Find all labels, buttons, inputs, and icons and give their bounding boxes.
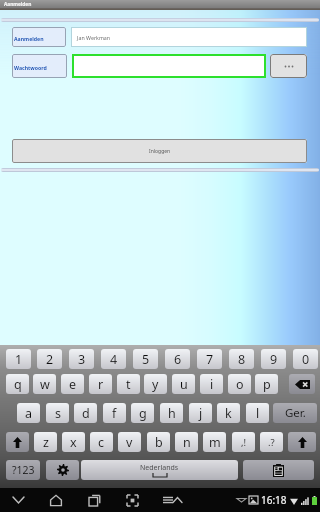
button[interactable]: 3 [69,349,94,369]
button[interactable]: Space [81,460,238,480]
staticText: g [139,405,147,422]
button[interactable]: j [189,403,212,423]
staticText: Nederlands [140,463,179,473]
staticText: 0 [302,351,310,368]
button[interactable]: Home [46,490,66,510]
button[interactable]: f [103,403,126,423]
button[interactable] [72,54,266,78]
staticText: u [180,376,188,393]
button[interactable]: Clipboard [243,460,314,480]
button[interactable]: Ger. [273,403,317,423]
staticText: q [14,376,22,393]
staticText: e [69,376,77,393]
button[interactable]: v [118,432,141,452]
staticText: f [112,405,117,422]
staticText: r [98,376,104,393]
staticText: 7 [206,351,214,368]
button[interactable]: .? [260,432,283,452]
staticText: Jan Werkman [77,34,111,41]
button[interactable]: Settings [46,460,79,480]
staticText: 8 [238,351,246,368]
button[interactable]: x [62,432,85,452]
button[interactable]: Backspace [289,374,315,394]
staticText: x [70,434,77,451]
staticText: h [168,405,176,422]
button[interactable]: m [203,432,226,452]
staticText: a [25,405,33,422]
staticText: d [82,405,90,422]
button[interactable]: 2 [37,349,62,369]
button[interactable]: r [89,374,112,394]
button[interactable]: u [172,374,195,394]
staticText: s [55,405,61,422]
button[interactable]: t [117,374,140,394]
button[interactable]: q [6,374,29,394]
button[interactable]: n [175,432,198,452]
staticText: i [210,376,214,393]
staticText: 4 [110,351,118,368]
button[interactable]: ,! [232,432,255,452]
button[interactable]: h [160,403,183,423]
staticText: 6 [174,351,182,368]
staticText: t [126,376,131,393]
button[interactable]: l [246,403,269,423]
button[interactable]: z [34,432,57,452]
staticText: 5 [142,351,150,368]
button[interactable]: Wachtwoord [12,54,67,78]
staticText: 1 [15,351,23,368]
button[interactable]: Hide keyboard [8,490,28,510]
button[interactable]: c [90,432,113,452]
staticText: Wachtwoord [14,64,47,71]
button[interactable]: 7 [197,349,222,369]
button[interactable]: p [255,374,278,394]
button[interactable]: Shift [6,432,29,452]
staticText: Inloggen [149,148,171,155]
staticText: n [183,434,191,451]
button[interactable]: 0 [293,349,318,369]
button[interactable]: a [17,403,40,423]
button[interactable]: Shift [288,432,316,452]
staticText: 16:18 [261,493,287,507]
button[interactable]: s [46,403,69,423]
button[interactable]: Inloggen [12,139,307,163]
staticText: w [40,376,50,393]
button[interactable]: 6 [165,349,190,369]
button[interactable]: k [217,403,240,423]
button[interactable]: g [131,403,154,423]
button[interactable]: b [147,432,170,452]
button[interactable]: Recent apps [84,490,104,510]
staticText: ?123 [12,463,35,477]
button[interactable]: Jan Werkman [71,27,307,47]
button[interactable]: o [228,374,251,394]
staticText: p [263,376,271,393]
button[interactable]: 5 [133,349,158,369]
staticText: Aanmelden [4,1,32,8]
staticText: 3 [78,351,86,368]
staticText: .? [268,436,275,449]
button[interactable]: Screenshot [122,490,142,510]
staticText: l [256,405,260,422]
staticText: c [98,434,105,451]
button[interactable]: ?123 [6,460,40,480]
button[interactable]: d [74,403,97,423]
button[interactable]: i [200,374,223,394]
staticText: 9 [270,351,278,368]
button[interactable]: y [144,374,167,394]
button[interactable]: Aanmelden [12,27,66,47]
button[interactable]: 9 [261,349,286,369]
button[interactable]: Menu [160,488,184,512]
button[interactable]: w [33,374,56,394]
staticText: b [155,434,163,451]
button[interactable]: 8 [229,349,254,369]
button[interactable]: More options [270,54,307,78]
button[interactable]: 1 [6,349,31,369]
staticText: Ger. [285,405,306,421]
staticText: k [225,405,232,422]
staticText: m [209,434,221,451]
button[interactable]: 4 [101,349,126,369]
staticText: v [126,434,133,451]
staticText: 2 [46,351,54,368]
staticText: j [199,405,203,422]
staticText: Aanmelden [14,35,44,42]
button[interactable]: e [61,374,84,394]
